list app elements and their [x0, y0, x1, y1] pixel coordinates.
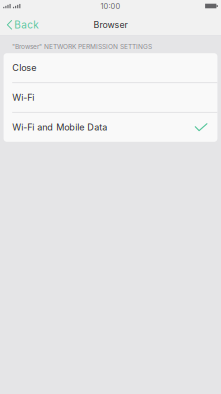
staticText: 10:00 [100, 2, 120, 11]
staticText: Browser [93, 19, 127, 30]
staticText: Wi-Fi and Mobile Data [12, 122, 107, 133]
staticText: Wi-Fi [12, 92, 34, 103]
staticText: "Browser" NETWORK PERMISSION SETTINGS [12, 43, 152, 50]
button[interactable]: Wi-Fi and Mobile Data [4, 113, 217, 142]
button[interactable]: Back [0, 13, 42, 35]
staticText: Back [14, 19, 38, 31]
staticText: Close [12, 62, 36, 73]
button[interactable]: Wi-Fi [4, 83, 217, 112]
button[interactable]: Close [4, 53, 217, 82]
